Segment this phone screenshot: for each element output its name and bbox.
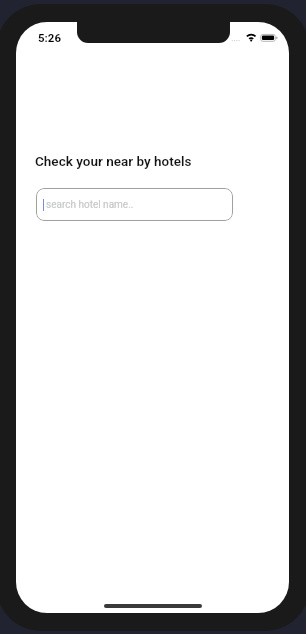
staticText: search hotel name.. (46, 199, 134, 211)
staticText: 5:26 (38, 31, 62, 44)
staticText: Check your near by hotels (35, 153, 192, 169)
button[interactable]: Search hotels (36, 188, 233, 221)
